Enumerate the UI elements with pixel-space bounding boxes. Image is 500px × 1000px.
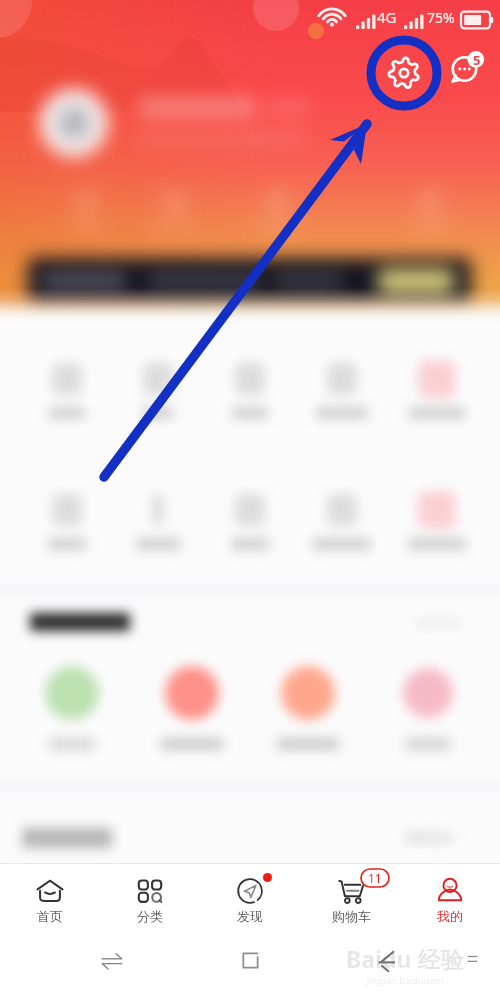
staticText: 我的 [437, 908, 463, 924]
staticText: 11 [368, 870, 382, 886]
button[interactable]: 发现 [204, 864, 296, 937]
button[interactable]: Back [376, 950, 396, 970]
staticText: 购物车 [332, 908, 371, 924]
button[interactable]: Settings [385, 54, 423, 92]
staticText: 查看更多 › [404, 829, 459, 845]
staticText: Baidu 经验 [346, 943, 464, 974]
staticText: jingyan.baidu.com [366, 974, 444, 986]
button[interactable]: 首页 [4, 864, 96, 937]
button[interactable]: Messages [446, 48, 488, 90]
button[interactable]: Recent apps [240, 950, 261, 971]
staticText: 首页 [37, 908, 63, 924]
button[interactable]: Switch [101, 950, 123, 972]
button[interactable]: Menu [465, 952, 480, 967]
button[interactable]: 11 [305, 864, 397, 937]
staticText: 75% [427, 8, 455, 27]
staticText: 4G [377, 7, 397, 27]
staticText: 分类 [137, 908, 163, 924]
staticText: 发现 [237, 908, 263, 924]
staticText: 5 [473, 51, 481, 69]
button[interactable]: 我的 [404, 864, 496, 937]
button[interactable]: 分类 [104, 864, 196, 937]
